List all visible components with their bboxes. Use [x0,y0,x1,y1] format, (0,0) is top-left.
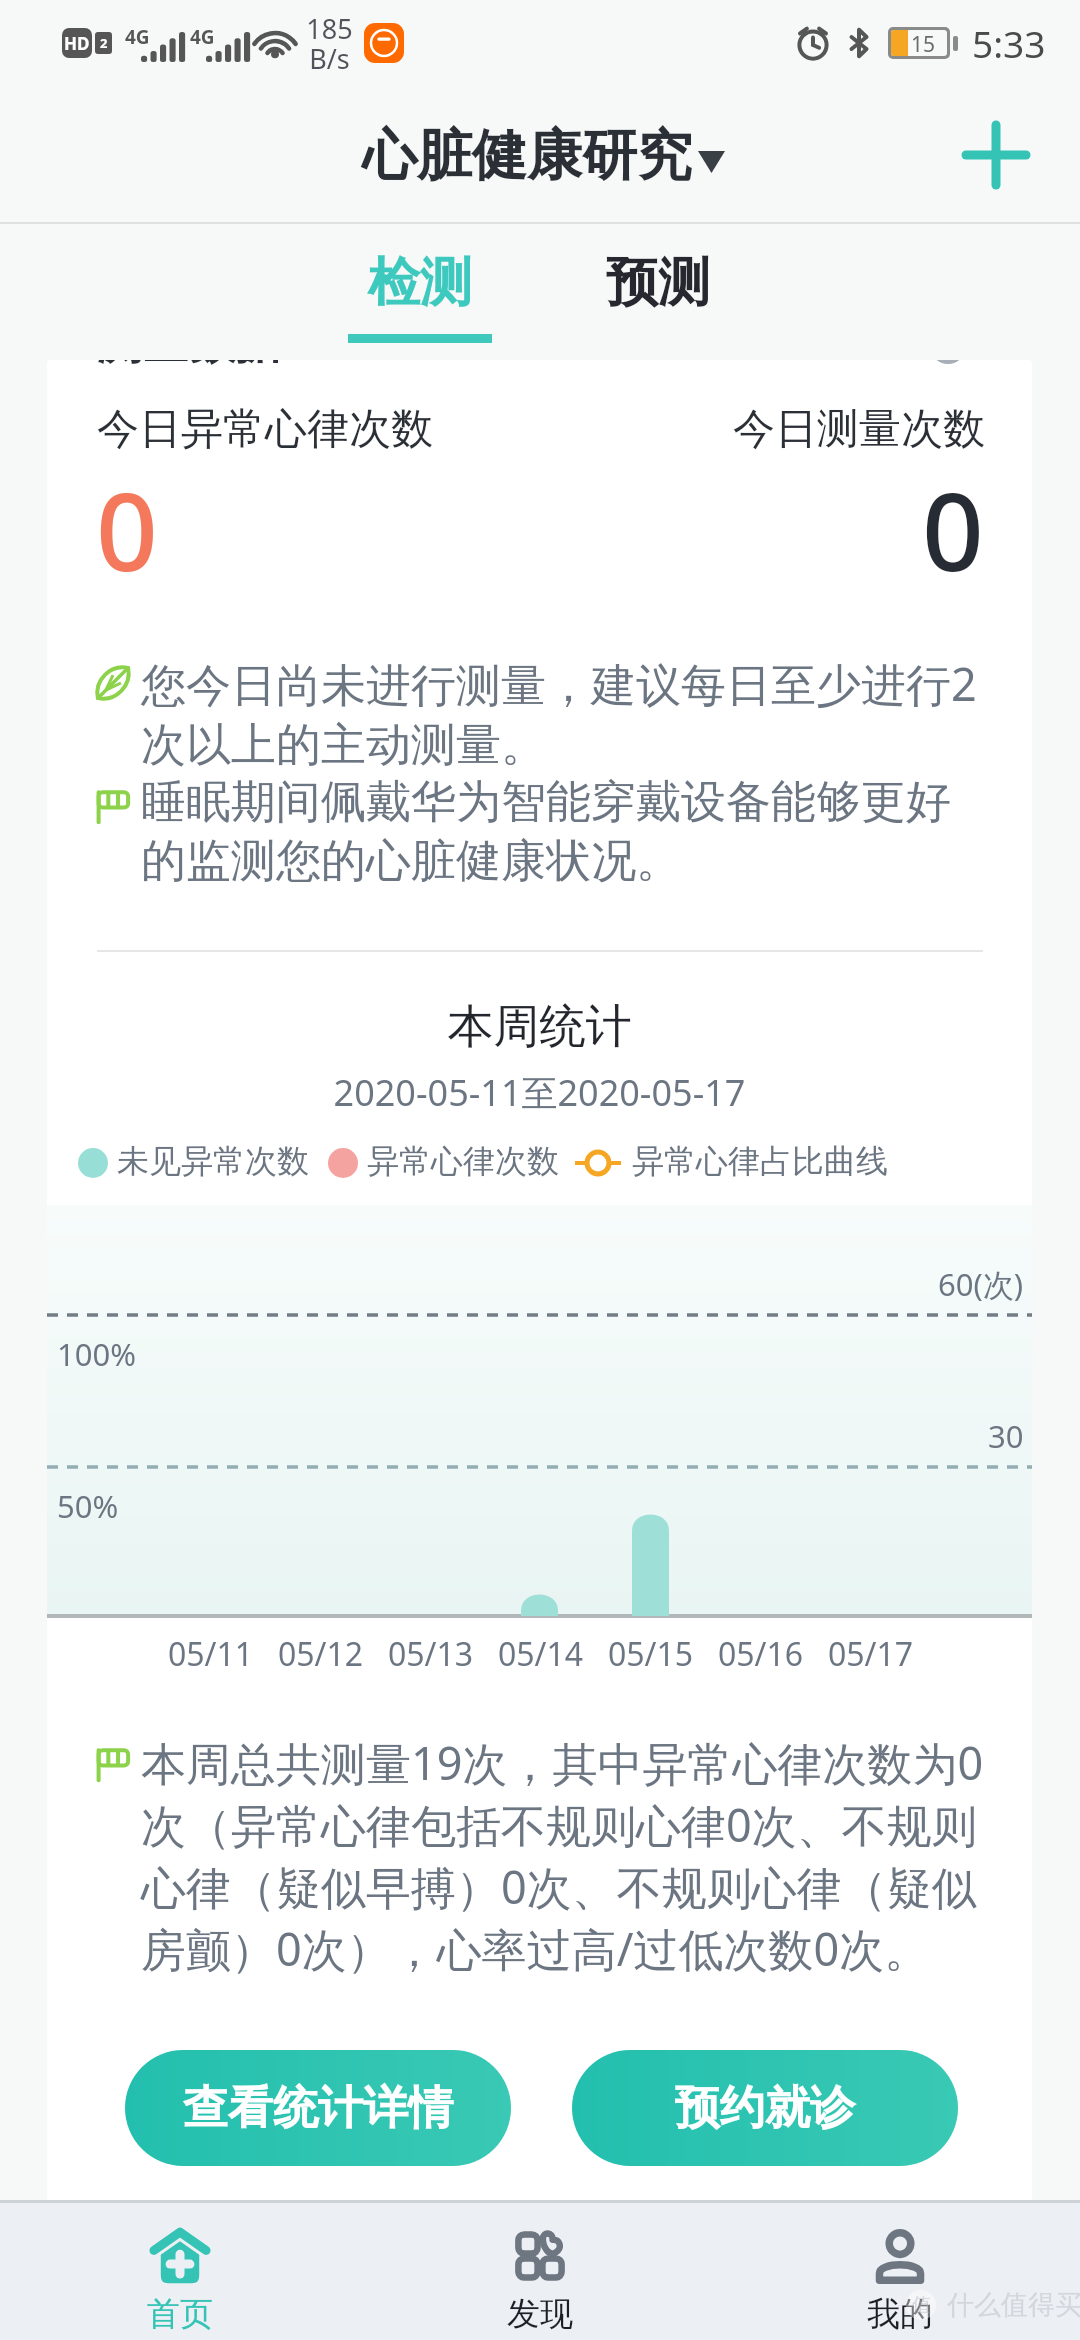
staticText: 异常心律占比曲线 [632,1141,888,1181]
staticText: 2 [100,34,108,52]
staticText: 未见异常次数 [117,1141,309,1181]
button[interactable]: 检测 [300,226,540,360]
staticText: 100% [57,1333,136,1375]
staticText: 05/14 [498,1632,584,1676]
staticText: 今日测量次数 [733,403,985,456]
staticText: 今日异常心律次数 [97,403,433,456]
staticText: 0 [96,456,158,603]
staticText: 05/16 [718,1632,804,1676]
staticText: 185 B/s [306,10,353,76]
button[interactable]: 查看统计详情 [125,2050,511,2166]
staticText: 5:33 [972,18,1046,68]
staticText: 心脏健康研究 [362,121,692,190]
staticText: 首页 [147,2293,213,2335]
staticText: 05/11 [168,1632,254,1676]
staticText: 30 [988,1415,1024,1457]
staticText: 预约就诊 [675,2080,855,2137]
staticText: 本周统计 [47,998,1032,1056]
button[interactable]: 发现 [360,2203,720,2340]
staticText: 4G [190,24,215,50]
staticText: 50% [57,1485,119,1527]
staticText: 0 [922,456,984,603]
staticText: HD [64,32,90,55]
staticText: 检测 [368,250,472,316]
staticText: 05/15 [608,1632,694,1676]
staticText: 60(次) [938,1263,1024,1305]
staticText: 4G [125,24,150,50]
staticText: 本周总共测量19次，其中异常心律次数为0次（异常心律包括不规则心律0次、不规则心… [141,1732,991,1979]
staticText: 异常心律次数 [367,1141,559,1181]
staticText: 15 [911,30,936,56]
staticText: 什么值得买 [947,2288,1080,2322]
staticText: 发现 [507,2293,573,2335]
button[interactable]: Add [936,95,1056,215]
button[interactable]: 首页 [0,2203,360,2340]
staticText: 预测 [606,250,710,316]
button[interactable]: 预测 [538,226,778,360]
button[interactable]: 预约就诊 [572,2050,958,2166]
button[interactable]: 我的 [720,2203,1080,2340]
staticText: 查看统计详情 [183,2080,453,2137]
staticText: 测量数据 [97,360,281,372]
staticText: 2020-05-11至2020-05-17 [47,1068,1032,1117]
staticText: 我的 [867,2293,933,2335]
staticText: 值 [912,2293,931,2317]
staticText: 05/17 [828,1632,914,1676]
staticText: 您今日尚未进行测量，建议每日至少进行2次以上的主动测量。 [141,653,987,773]
staticText: 睡眠期间佩戴华为智能穿戴设备能够更好的监测您的心脏健康状况。 [141,774,987,889]
staticText: 05/12 [278,1632,364,1676]
staticText: 05/13 [388,1632,474,1676]
